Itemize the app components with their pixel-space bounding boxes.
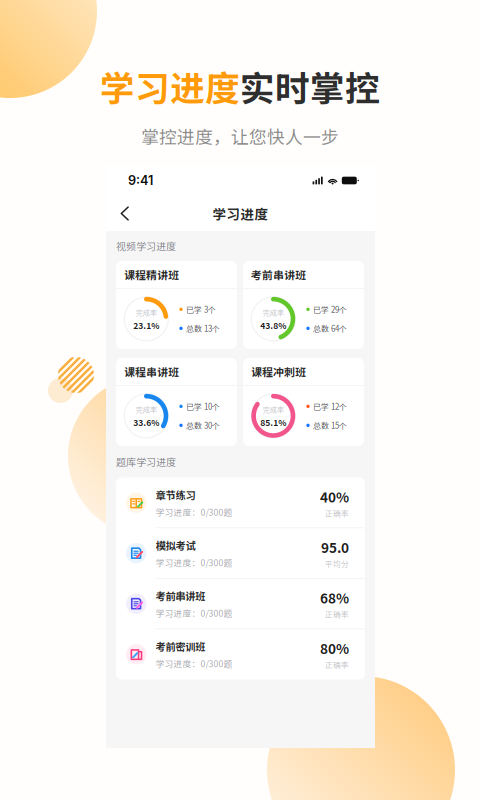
button[interactable]: 考前串讲班: [116, 578, 365, 629]
staticText: 学习进度：0/300题: [155, 556, 232, 569]
button[interactable]: 课程精讲班: [116, 261, 237, 349]
staticText: 完成率: [136, 404, 157, 415]
staticText: 68%: [320, 588, 349, 607]
staticText: 总数 15个: [313, 420, 347, 431]
staticText: 80%: [320, 638, 349, 658]
staticText: 课程串讲班: [124, 364, 179, 379]
staticText: 总数 64个: [313, 323, 347, 334]
staticText: 完成率: [263, 307, 284, 318]
staticText: 95.0: [321, 537, 349, 557]
staticText: 33.6%: [133, 416, 159, 428]
staticText: 23.1%: [133, 319, 159, 331]
staticText: 9:41: [128, 173, 153, 188]
staticText: 完成率: [136, 307, 157, 318]
button[interactable]: 考前密训班: [116, 629, 365, 679]
staticText: 模拟考试: [155, 538, 195, 553]
staticText: 学习进度：0/300题: [155, 607, 232, 619]
button[interactable]: 模拟考试: [116, 528, 365, 578]
button[interactable]: 课程冲刺班: [243, 358, 364, 446]
staticText: 完成率: [263, 404, 284, 415]
staticText: 40%: [320, 487, 349, 506]
staticText: 掌控进度，让您快人一步: [141, 123, 339, 149]
staticText: 总数 30个: [186, 420, 220, 431]
staticText: 平均分: [325, 558, 349, 569]
staticText: 考前串讲班: [251, 267, 306, 282]
staticText: 学习进度: [212, 204, 268, 223]
staticText: 已学 12个: [313, 401, 347, 412]
staticText: 总数 13个: [186, 323, 220, 334]
staticText: 实时掌控: [240, 61, 380, 111]
staticText: 章节练习: [155, 487, 195, 502]
staticText: 考前密训班: [155, 639, 205, 654]
staticText: 题库学习进度: [116, 454, 176, 469]
button[interactable]: Back: [106, 200, 138, 226]
button[interactable]: 课程串讲班: [116, 358, 237, 446]
button[interactable]: 章节练习: [116, 477, 365, 528]
staticText: 正确率: [325, 659, 349, 670]
staticText: 学习进度：0/300题: [155, 506, 232, 518]
staticText: 正确率: [325, 507, 349, 519]
staticText: 课程精讲班: [124, 267, 179, 282]
staticText: 考前串讲班: [155, 588, 205, 603]
button[interactable]: 考前串讲班: [243, 261, 364, 349]
staticText: 学习进度：0/300题: [155, 657, 232, 670]
staticText: 视频学习进度: [116, 239, 176, 253]
staticText: 已学 29个: [313, 304, 347, 315]
staticText: 85.1%: [260, 416, 286, 428]
staticText: 已学 3个: [186, 304, 216, 315]
staticText: 正确率: [325, 608, 349, 620]
staticText: 已学 10个: [186, 401, 220, 412]
staticText: 课程冲刺班: [251, 364, 306, 379]
staticText: 学习进度: [100, 61, 240, 111]
staticText: 43.8%: [260, 319, 286, 331]
